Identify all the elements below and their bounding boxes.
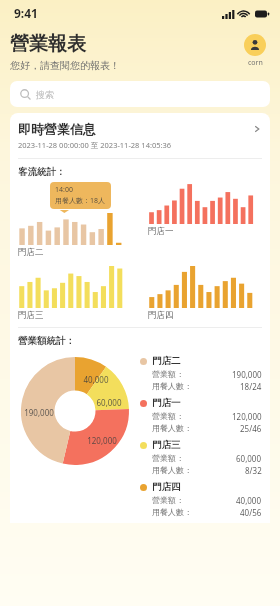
button[interactable]: 門店二: [140, 355, 270, 397]
staticText: 門店二: [152, 355, 181, 367]
staticText: 120,000: [87, 435, 117, 446]
staticText: 門店三: [152, 439, 181, 451]
staticText: 14:00: [55, 185, 73, 195]
button[interactable]: 即時營業信息: [10, 121, 270, 150]
staticText: 客流統計：: [18, 166, 66, 178]
staticText: 用餐人數：: [152, 423, 192, 433]
staticText: 門店一: [148, 226, 174, 237]
staticText: 2023-11-28 00:00:00 至 2023-11-28 14:05:3…: [18, 140, 172, 150]
button[interactable]: 門店三: [10, 266, 140, 321]
staticText: 營業額：: [152, 453, 184, 463]
staticText: 用餐人數：: [152, 507, 192, 517]
button[interactable]: 門店一: [140, 397, 270, 439]
staticText: 營業額：: [152, 369, 184, 379]
staticText: 40/56: [240, 507, 262, 518]
button[interactable]: 14:00: [10, 182, 140, 258]
staticText: 門店二: [18, 247, 44, 258]
other: Open details: [252, 124, 262, 134]
staticText: 用餐人數：: [152, 381, 192, 391]
staticText: 9:41: [14, 5, 38, 21]
staticText: 即時營業信息: [18, 121, 96, 137]
staticText: 120,000: [232, 411, 262, 422]
staticText: corn: [248, 58, 263, 68]
button[interactable]: 門店三: [140, 439, 270, 481]
staticText: 40,000: [236, 495, 262, 506]
staticText: 用餐人數：18人: [55, 196, 106, 206]
staticText: 190,000: [232, 369, 262, 380]
button[interactable]: Account corn: [242, 32, 268, 70]
staticText: 您好，請查閱您的報表！: [10, 59, 120, 72]
staticText: 門店三: [18, 310, 44, 321]
button[interactable]: 門店四: [140, 266, 270, 321]
staticText: 8/32: [245, 465, 262, 476]
staticText: 營業報表: [10, 32, 86, 56]
staticText: 門店四: [152, 481, 181, 493]
staticText: 門店一: [152, 397, 181, 409]
staticText: 190,000: [24, 407, 54, 418]
staticText: 營業額：: [152, 411, 184, 421]
staticText: 用餐人數：: [152, 465, 192, 475]
button[interactable]: 搜索: [10, 81, 270, 107]
staticText: 40,000: [83, 374, 109, 385]
staticText: 60,000: [96, 397, 122, 408]
button[interactable]: 門店一: [140, 182, 270, 237]
staticText: 60,000: [236, 453, 262, 464]
staticText: 營業額：: [152, 495, 184, 505]
staticText: 門店四: [148, 310, 174, 321]
staticText: 營業額統計：: [18, 335, 75, 347]
staticText: 25/46: [240, 423, 262, 434]
staticText: 18/24: [240, 381, 262, 392]
staticText: 搜索: [36, 89, 54, 100]
button[interactable]: 門店四: [140, 481, 270, 523]
